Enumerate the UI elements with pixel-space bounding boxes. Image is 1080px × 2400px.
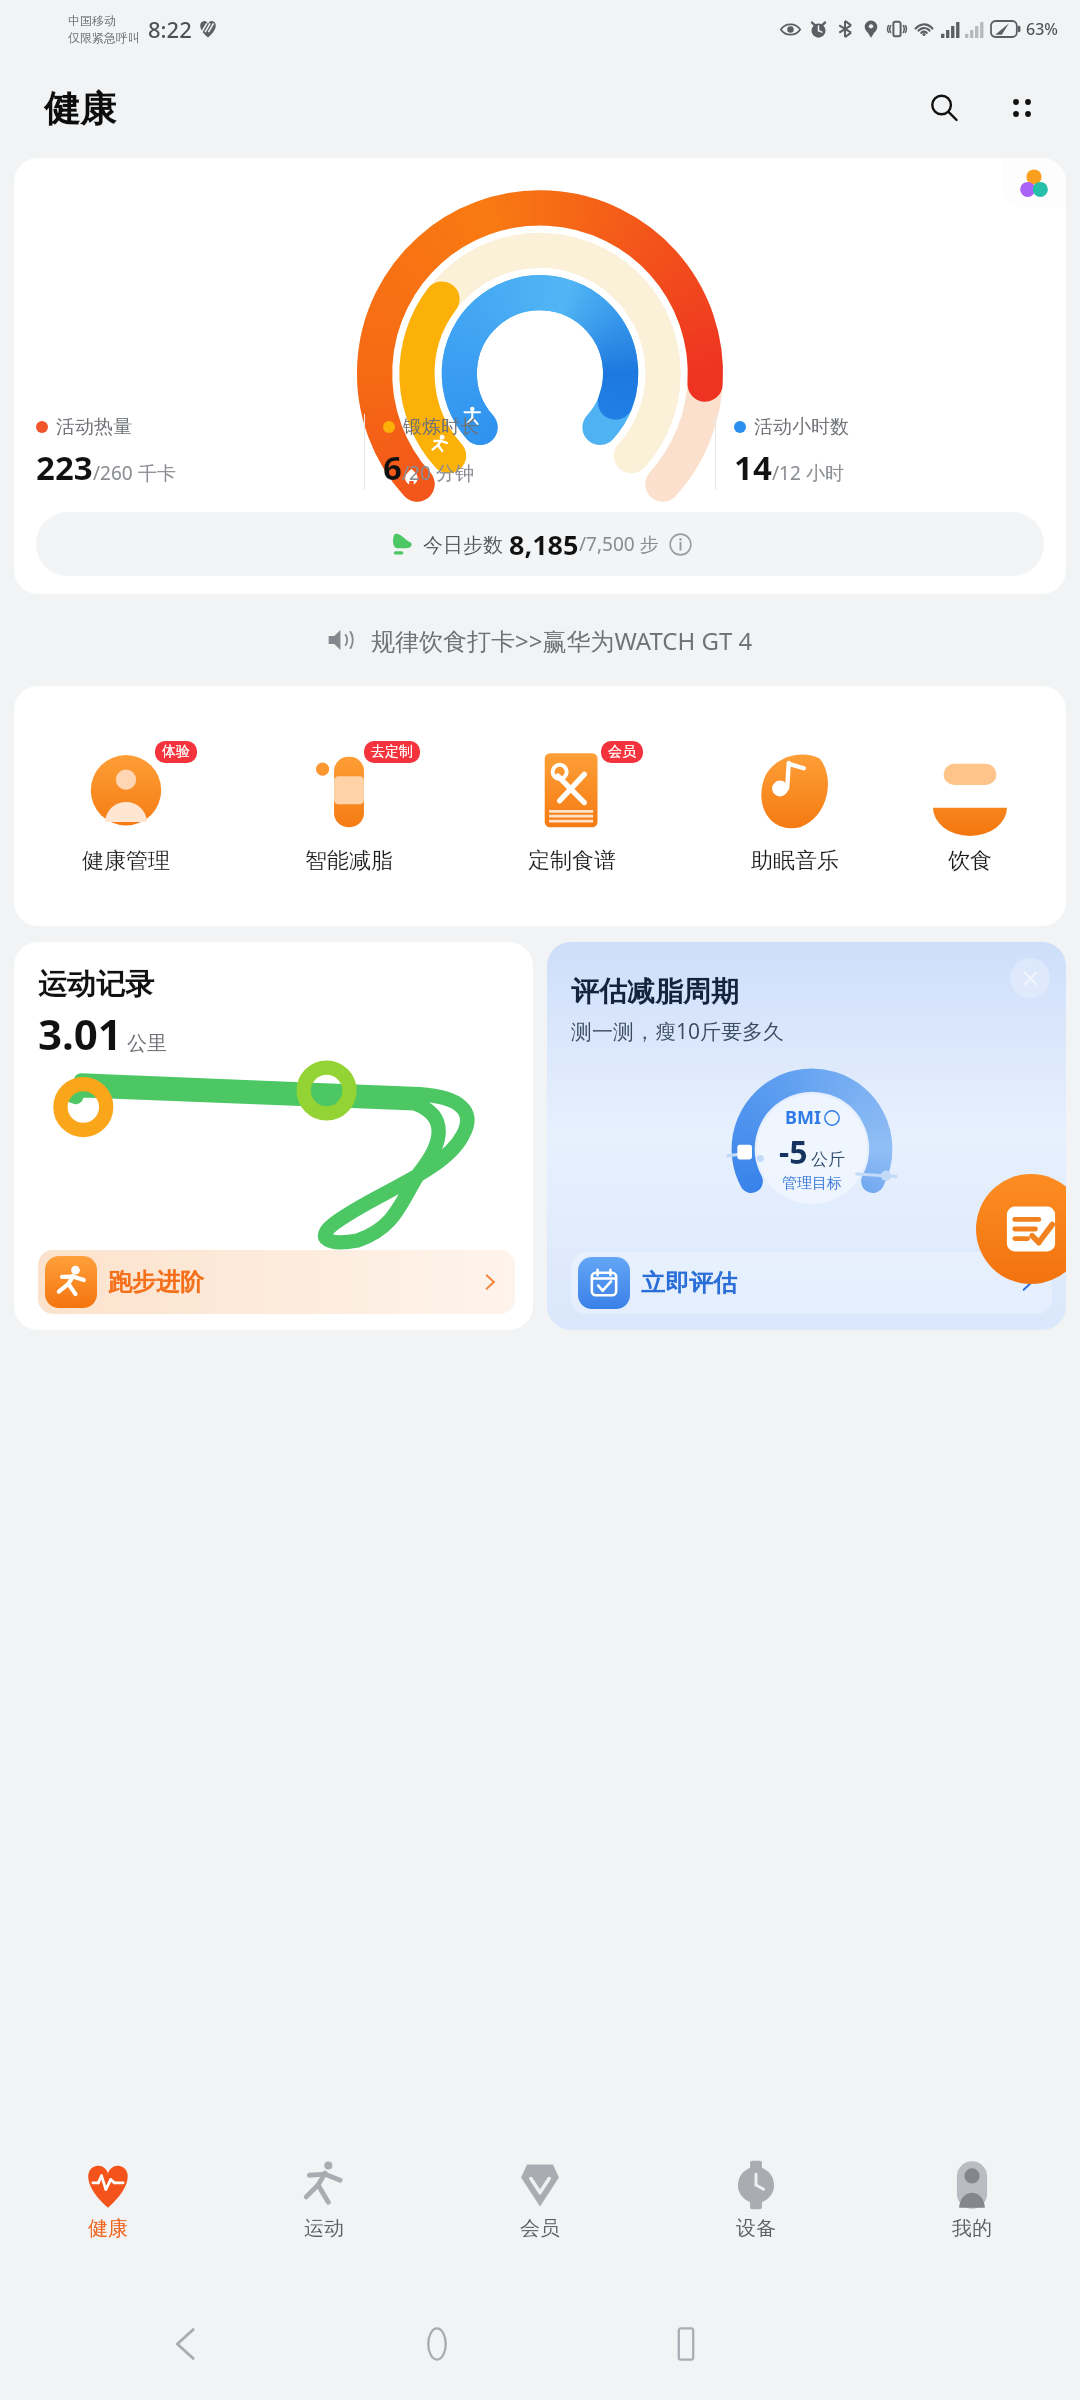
button[interactable]: 立即评估 [571,1252,1052,1314]
staticText: 运动 [304,2216,344,2241]
staticText: 规律饮食打卡>>赢华为WATCH GT 4 [371,624,753,657]
staticText: 智能减脂 [305,847,393,875]
button[interactable]: Close [547,942,1066,1330]
button[interactable]: Search [916,80,972,136]
staticText: 活动热量 [56,415,132,439]
staticText: /20 [402,460,431,486]
button[interactable]: Add record [976,1174,1066,1284]
button[interactable]: Home [392,2299,482,2389]
staticText: 体验 [162,743,190,761]
button[interactable]: 体验 [14,686,237,926]
staticText: 活动小时数 [754,415,849,439]
staticText: /7,500 步 [579,531,659,557]
button[interactable]: 今日步数 [36,512,1044,576]
button[interactable]: 运动记录 [14,942,533,1330]
button[interactable]: More options [994,80,1050,136]
staticText: 会员 [520,2216,560,2241]
button[interactable]: 我的 [864,2146,1080,2288]
staticText: 锻炼时长 [403,415,479,439]
staticText: 管理目标 [782,1174,842,1193]
button[interactable]: 规律饮食打卡>>赢华为WATCH GT 4 [0,594,1080,686]
staticText: /12 [772,460,801,486]
staticText: 健康 [44,86,116,131]
staticText: -5 [779,1130,808,1174]
button[interactable]: Health apps [1002,158,1066,208]
staticText: 立即评估 [641,1268,737,1298]
staticText: BMI [785,1105,821,1130]
staticText: 跑步进阶 [108,1267,204,1297]
staticText: 仅限紧急呼叫 [68,30,140,45]
staticText: /260 [93,460,133,486]
button[interactable]: 会员 [432,2146,648,2288]
staticText: 饮食 [948,847,992,875]
staticText: 千卡 [133,460,176,486]
button[interactable]: 运动 [216,2146,432,2288]
staticText: 设备 [736,2216,776,2241]
staticText: 14 [734,445,772,490]
staticText: 公里 [127,1031,167,1056]
button[interactable]: 活动热量 [14,158,1066,594]
staticText: 63% [1026,18,1058,40]
staticText: 8,185 [509,526,579,563]
button[interactable]: Close [1010,958,1050,998]
button[interactable]: 健康 [0,2146,216,2288]
staticText: 会员 [608,743,636,761]
staticText: 8:22 [148,14,192,44]
staticText: 测一测，瘦10斤要多久 [571,1017,785,1046]
staticText: 评估减脂周期 [571,974,739,1009]
staticText: 运动记录 [38,966,154,1003]
staticText: 6 [383,445,402,490]
staticText: 今日步数 [423,531,509,558]
staticText: 223 [36,445,93,490]
staticText: 3.01 [38,1005,122,1062]
staticText: 助眠音乐 [751,847,839,875]
button[interactable]: 会员 [460,686,683,926]
button[interactable]: 饮食 [906,686,1034,926]
button[interactable]: 跑步进阶 [38,1250,515,1314]
button[interactable]: Back [143,2299,233,2389]
button[interactable]: 去定制 [237,686,460,926]
button[interactable]: 设备 [648,2146,864,2288]
staticText: 健康 [88,2216,128,2241]
staticText: 去定制 [371,743,413,761]
staticText: 定制食谱 [528,847,616,875]
staticText: 公斤 [811,1149,845,1170]
staticText: 小时 [801,460,844,486]
staticText: 我的 [952,2216,992,2241]
button[interactable]: Recent apps [641,2299,731,2389]
staticText: 健康管理 [82,847,170,875]
staticText: 分钟 [431,460,474,486]
button[interactable]: 助眠音乐 [683,686,906,926]
staticText: 中国移动 [68,13,116,28]
